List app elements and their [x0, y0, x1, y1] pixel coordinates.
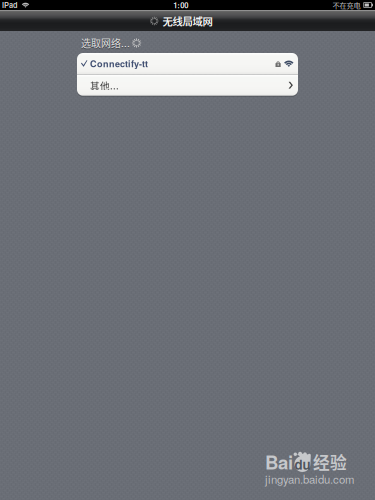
staticText: 1:00	[173, 0, 188, 11]
staticText: du	[294, 455, 310, 474]
staticText: jingyan.baidu.com	[265, 471, 354, 487]
button[interactable]: 其他...	[77, 75, 298, 96]
button[interactable]: Connectify-tt	[77, 53, 298, 74]
staticText: 选取网络...	[81, 37, 130, 51]
staticText: 不在充电	[332, 0, 360, 10]
staticText: 选取网络...	[81, 36, 130, 50]
staticText: Connectify-tt	[90, 57, 148, 70]
staticText: 其他...	[90, 78, 119, 92]
staticText: Bai	[265, 448, 293, 475]
staticText: iPad	[2, 0, 18, 10]
staticText: 经验	[313, 450, 347, 474]
staticText: 无线局域网	[162, 13, 212, 29]
